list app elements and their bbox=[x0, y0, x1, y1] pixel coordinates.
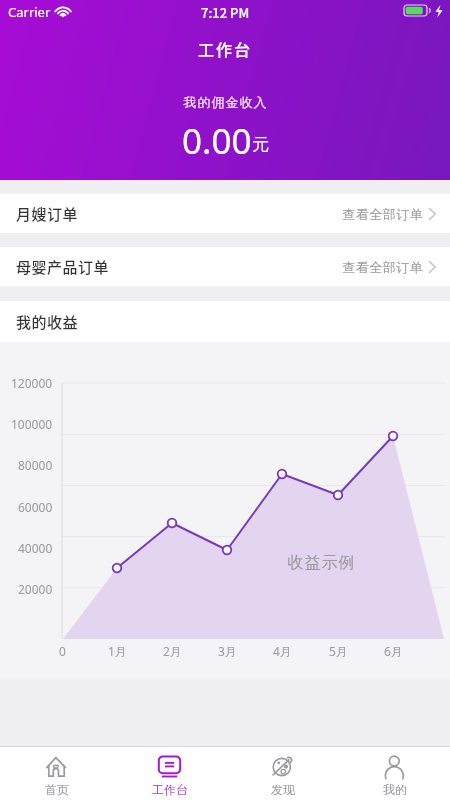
staticText: 120000 bbox=[11, 375, 53, 391]
staticText: 查看全部订单 bbox=[342, 206, 423, 222]
staticText: 月嫂订单 bbox=[16, 203, 79, 225]
staticText: 我的收益 bbox=[16, 311, 79, 333]
button[interactable]: 我的 bbox=[339, 747, 450, 800]
button[interactable]: 首页 bbox=[0, 747, 113, 800]
button[interactable]: 母婴产品订单 bbox=[0, 247, 450, 286]
staticText: 5月 bbox=[329, 643, 348, 659]
staticText: 工作台 bbox=[152, 782, 188, 797]
staticText: 发现 bbox=[271, 782, 295, 797]
button[interactable]: 月嫂订单 bbox=[0, 194, 450, 233]
button[interactable]: 查看全部订单 bbox=[342, 206, 450, 222]
staticText: 1月 bbox=[108, 643, 127, 659]
staticText: 我的佣金收入 bbox=[183, 94, 267, 110]
button[interactable]: 我的收益 bbox=[0, 301, 450, 342]
staticText: 6月 bbox=[384, 643, 403, 659]
staticText: 40000 bbox=[18, 540, 53, 556]
staticText: 母婴产品订单 bbox=[16, 256, 110, 278]
staticText: 7:12 PM bbox=[201, 3, 250, 22]
staticText: 2月 bbox=[163, 643, 182, 659]
staticText: 0 bbox=[59, 643, 66, 659]
staticText: 查看全部订单 bbox=[342, 259, 423, 275]
button[interactable]: 工作台 bbox=[113, 747, 226, 800]
staticText: Carrier bbox=[8, 3, 51, 21]
staticText: 60000 bbox=[18, 499, 53, 515]
staticText: 3月 bbox=[218, 643, 237, 659]
staticText: 收益示例 bbox=[287, 553, 355, 573]
button[interactable]: 发现 bbox=[226, 747, 339, 800]
button[interactable]: 查看全部订单 bbox=[342, 259, 450, 275]
staticText: 我的 bbox=[383, 782, 407, 797]
staticText: 0.00 bbox=[182, 117, 252, 159]
staticText: 100000 bbox=[11, 416, 53, 432]
staticText: 元 bbox=[252, 134, 269, 155]
staticText: 首页 bbox=[45, 782, 69, 797]
staticText: 80000 bbox=[18, 457, 53, 473]
staticText: 4月 bbox=[273, 643, 292, 659]
staticText: 20000 bbox=[18, 581, 53, 597]
staticText: 工作台 bbox=[198, 37, 253, 60]
